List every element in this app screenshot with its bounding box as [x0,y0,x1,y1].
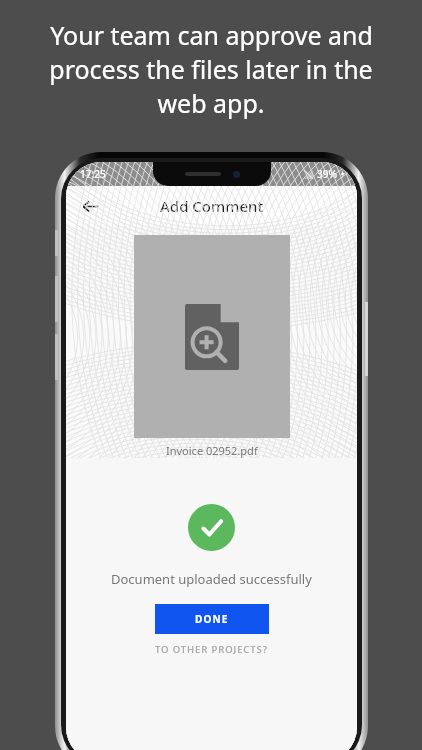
button[interactable]: Back [72,188,108,224]
staticText: Your team can approve and [50,18,373,52]
button[interactable]: Document preview [134,235,290,438]
staticText: TO OTHER PROJECTS? [155,643,268,656]
staticText: 39% [317,167,337,181]
staticText: Invoice 02952.pdf [166,443,258,458]
staticText: Document uploaded successfully [111,570,312,588]
staticText: Add Comment [160,196,264,216]
button[interactable]: DONE [155,604,269,634]
staticText: 17:25 [80,167,106,181]
staticText: process the files later in the [49,52,373,86]
staticText: DONE [195,612,229,626]
staticText: web app. [157,86,265,120]
button[interactable]: TO OTHER PROJECTS? [149,641,274,658]
